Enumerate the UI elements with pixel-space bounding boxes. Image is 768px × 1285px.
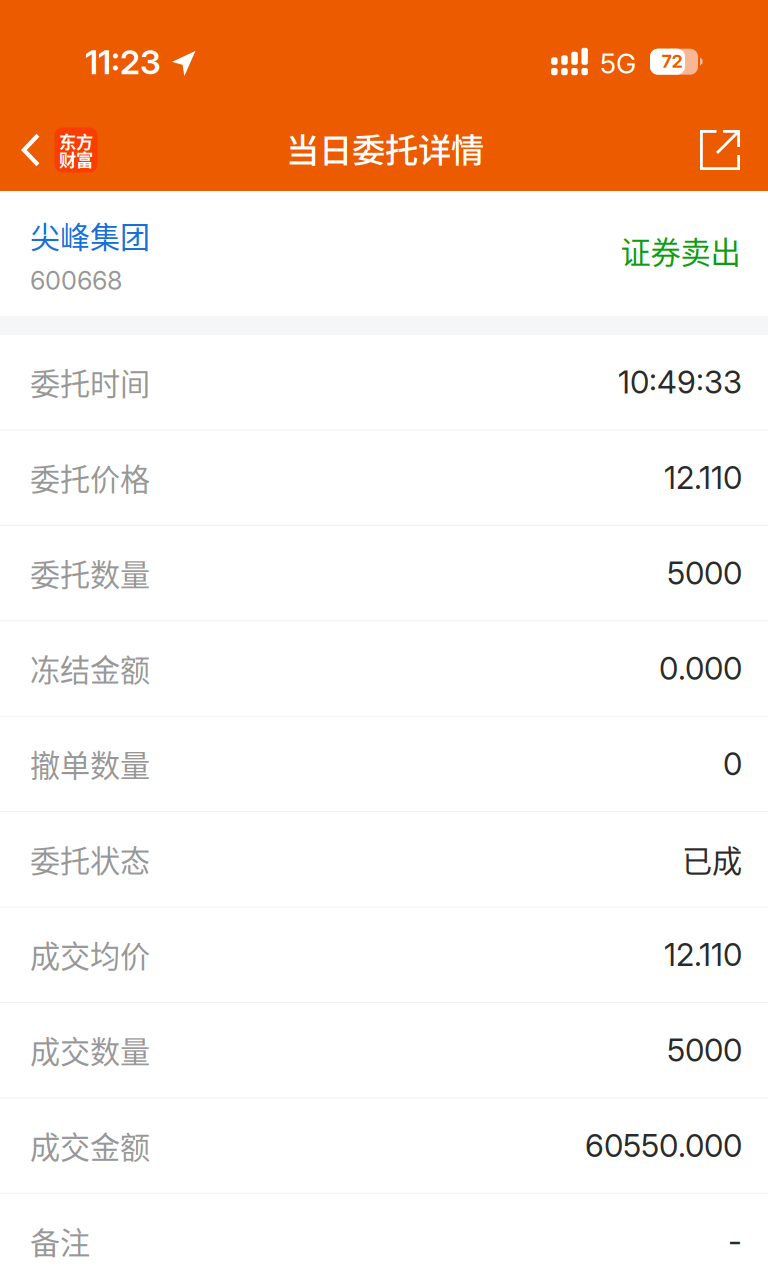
staticText: 冻结金额 bbox=[30, 647, 150, 690]
staticText: 12.110 bbox=[664, 459, 742, 497]
button[interactable]: Back bbox=[6, 112, 118, 188]
staticText: 委托数量 bbox=[30, 551, 150, 595]
button[interactable]: Share bbox=[683, 112, 757, 188]
staticText: 财富 bbox=[59, 146, 93, 172]
staticText: 成交均价 bbox=[30, 933, 150, 976]
staticText: - bbox=[728, 1222, 742, 1260]
staticText: 0 bbox=[723, 745, 742, 783]
staticText: 11:23 bbox=[85, 42, 161, 82]
staticText: 60550.000 bbox=[585, 1127, 742, 1164]
staticText: 当日委托详情 bbox=[286, 124, 484, 172]
staticText: 撤单数量 bbox=[30, 742, 150, 786]
staticText: 成交数量 bbox=[30, 1028, 150, 1072]
staticText: 10:49:33 bbox=[618, 363, 742, 401]
staticText: 成交金额 bbox=[30, 1124, 150, 1167]
staticText: 12.110 bbox=[664, 936, 742, 974]
staticText: 尖峰集团 bbox=[30, 213, 150, 257]
staticText: 委托价格 bbox=[30, 456, 150, 499]
staticText: 委托时间 bbox=[30, 360, 150, 404]
staticText: 5000 bbox=[667, 1031, 742, 1069]
staticText: 600668 bbox=[30, 265, 122, 296]
staticText: 0.000 bbox=[659, 650, 742, 687]
staticText: 5G bbox=[600, 47, 636, 80]
staticText: 委托状态 bbox=[30, 837, 150, 881]
staticText: 已成 bbox=[682, 837, 742, 881]
staticText: 备注 bbox=[30, 1219, 90, 1263]
staticText: 72 bbox=[661, 50, 682, 72]
staticText: 证券卖出 bbox=[620, 229, 740, 272]
staticText: 东方 bbox=[59, 128, 93, 154]
staticText: 5000 bbox=[667, 554, 742, 592]
